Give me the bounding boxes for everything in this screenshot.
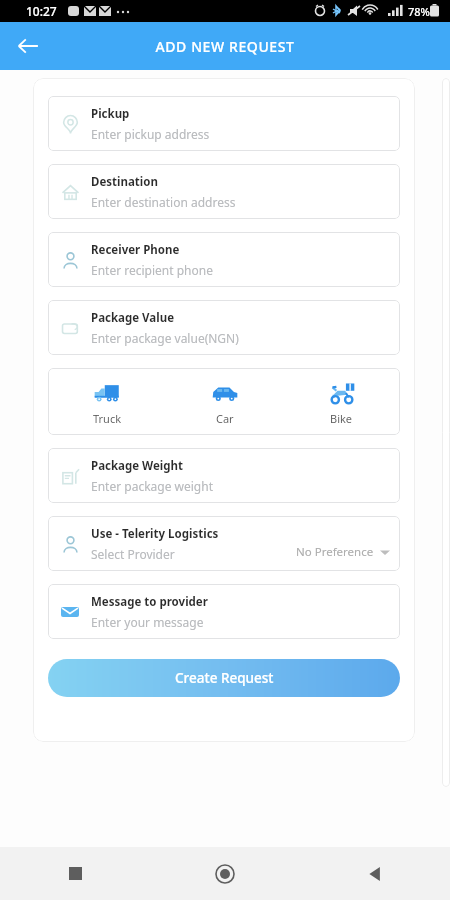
- button[interactable]: Package Weight: [48, 448, 400, 503]
- staticText: Message to provider: [91, 594, 208, 610]
- staticText: Destination: [91, 174, 158, 190]
- button[interactable]: Create Request: [48, 659, 400, 697]
- button[interactable]: Pickup: [48, 96, 400, 151]
- staticText: ADD NEW REQUEST: [155, 37, 295, 56]
- button[interactable]: Truck: [48, 368, 166, 435]
- button[interactable]: Home: [150, 847, 300, 900]
- button[interactable]: Receiver Phone: [48, 232, 400, 287]
- staticText: Car: [216, 411, 234, 426]
- button[interactable]: Car: [166, 368, 283, 435]
- staticText: Truck: [93, 411, 122, 426]
- button[interactable]: Back: [8, 26, 48, 66]
- staticText: Create Request: [175, 669, 274, 687]
- staticText: 78%: [408, 4, 430, 19]
- staticText: Enter destination address: [91, 194, 236, 210]
- staticText: Use - Telerity Logistics: [91, 526, 219, 542]
- staticText: Enter pickup address: [91, 126, 210, 142]
- staticText: Enter package weight: [91, 478, 213, 494]
- staticText: Bike: [330, 411, 353, 426]
- staticText: 10:27: [26, 3, 57, 19]
- staticText: No Preference: [296, 544, 374, 560]
- staticText: Select Provider: [91, 546, 175, 562]
- staticText: Receiver Phone: [91, 242, 180, 258]
- staticText: Package Weight: [91, 458, 184, 474]
- button[interactable]: Bike: [283, 368, 400, 435]
- button[interactable]: Recent apps: [0, 847, 150, 900]
- staticText: Enter recipient phone: [91, 262, 213, 278]
- button[interactable]: Use - Telerity Logistics: [48, 516, 400, 571]
- staticText: Enter package value(NGN): [91, 330, 239, 346]
- staticText: Pickup: [91, 106, 130, 122]
- button[interactable]: Destination: [48, 164, 400, 219]
- button[interactable]: Back: [300, 847, 450, 900]
- button[interactable]: Package Value: [48, 300, 400, 355]
- staticText: Enter your message: [91, 614, 204, 630]
- staticText: Package Value: [91, 310, 175, 326]
- button[interactable]: Message to provider: [48, 584, 400, 639]
